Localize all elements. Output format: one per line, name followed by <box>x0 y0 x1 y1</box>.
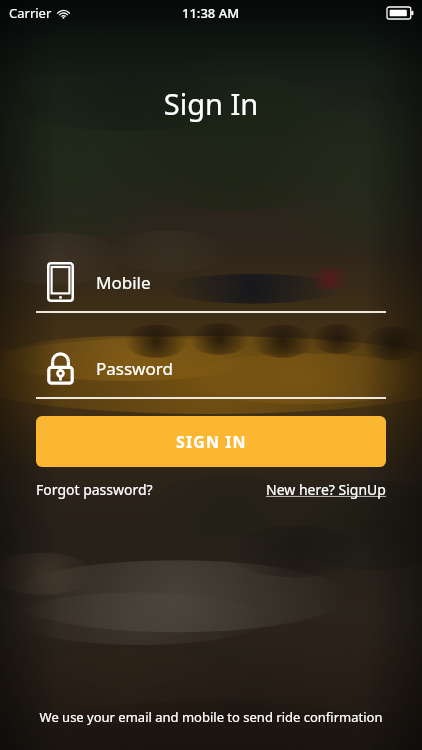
staticText: SIGN IN <box>176 431 247 453</box>
button[interactable]: Password field <box>36 339 386 399</box>
button[interactable]: SIGN IN <box>36 416 386 467</box>
button[interactable]: New here? SignUp <box>266 476 386 503</box>
staticText: Carrier <box>9 4 52 22</box>
staticText: Sign In <box>0 84 422 123</box>
staticText: 11:38 AM <box>182 4 240 22</box>
staticText: Mobile <box>96 271 151 294</box>
staticText: New here? SignUp <box>266 480 386 499</box>
staticText: We use your email and mobile to send rid… <box>16 708 406 726</box>
staticText: Password <box>96 357 173 380</box>
button[interactable]: Forgot password? <box>36 476 153 503</box>
button[interactable]: Mobile number field <box>36 253 386 313</box>
staticText: Forgot password? <box>36 480 153 499</box>
